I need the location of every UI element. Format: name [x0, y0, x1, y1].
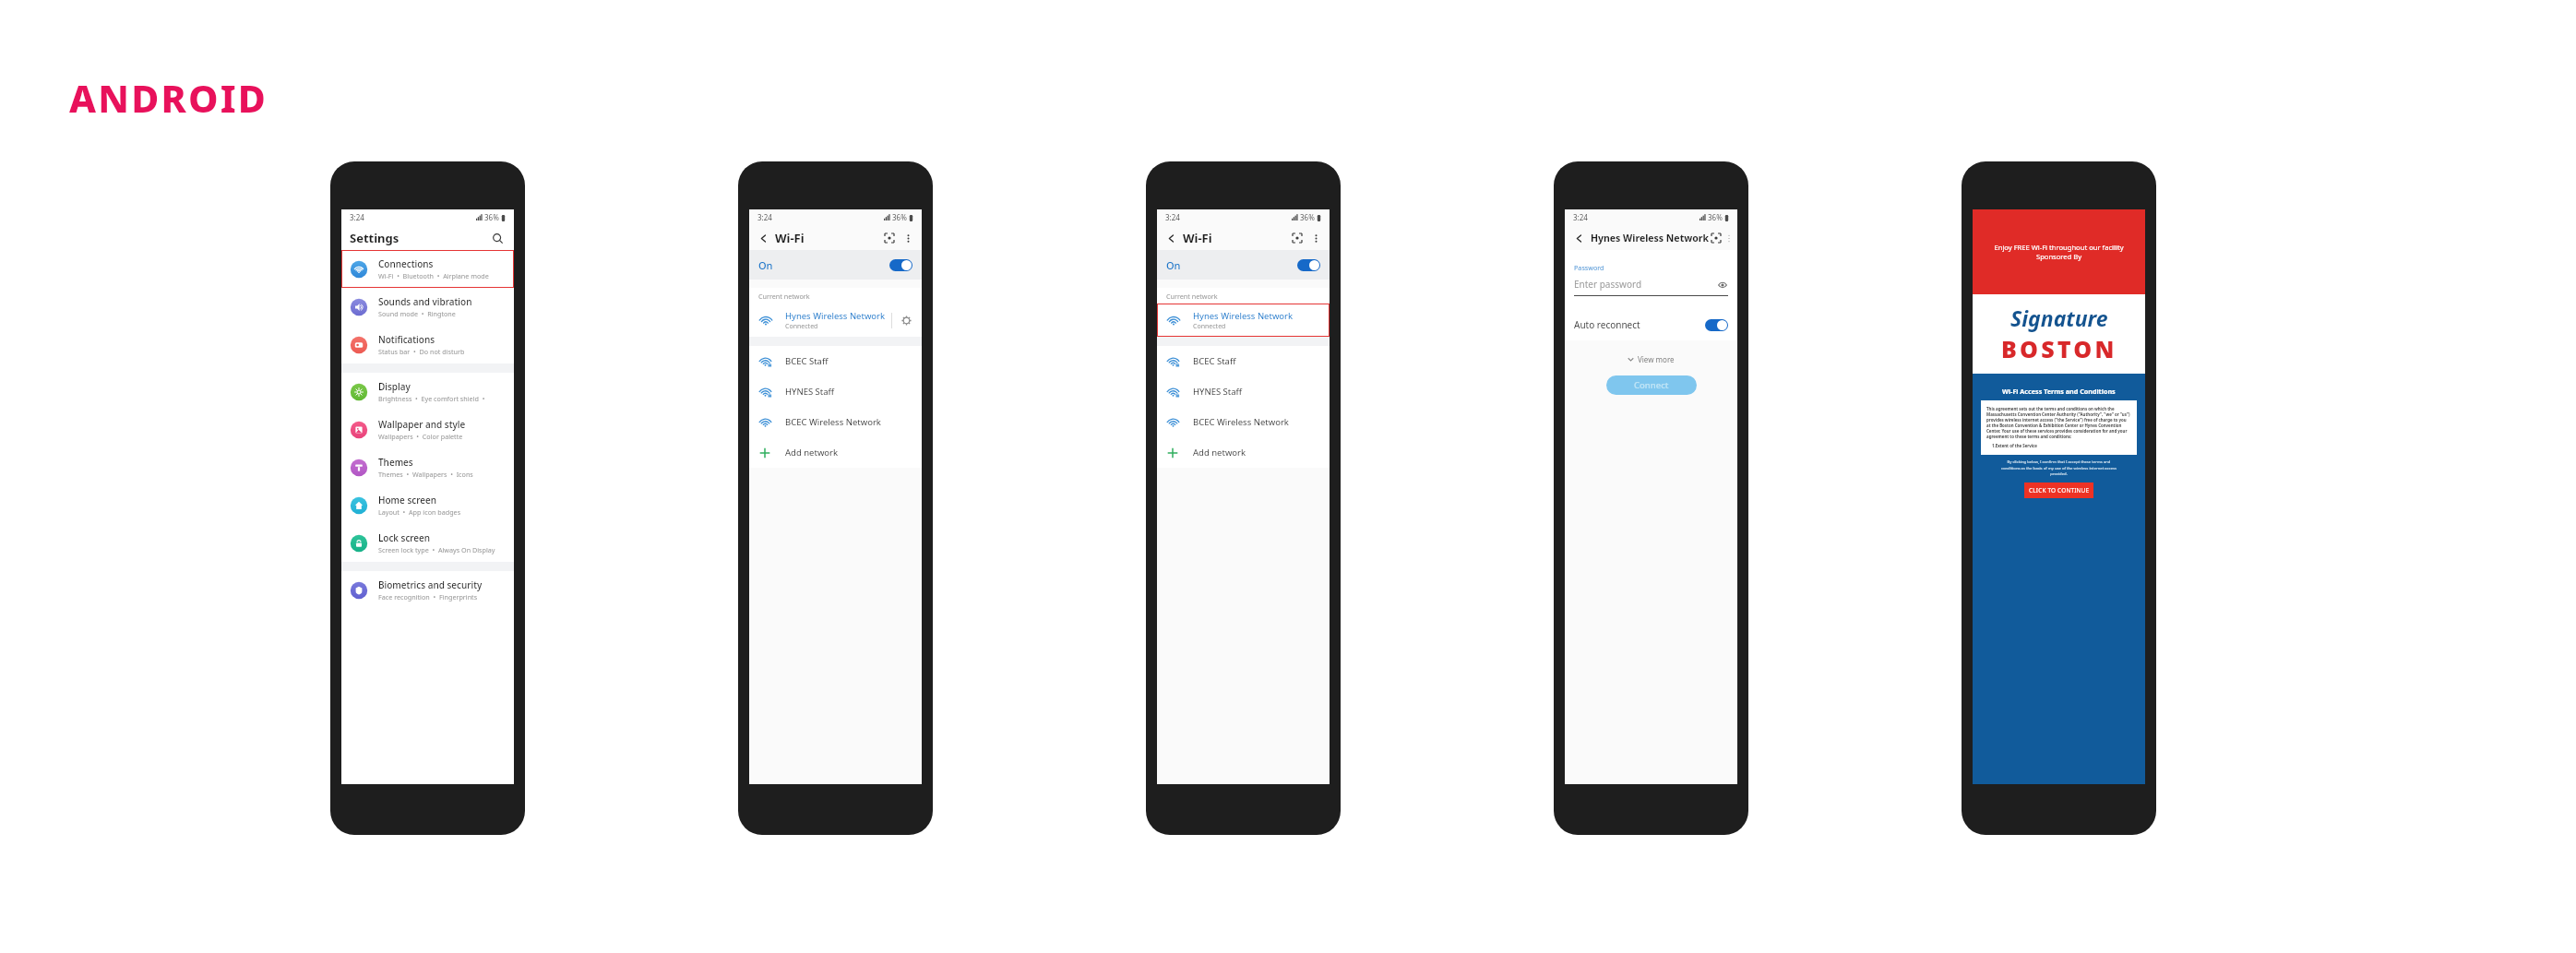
staticText: 36% — [1708, 212, 1723, 222]
button[interactable]: Auto reconnect — [1565, 309, 1737, 340]
button[interactable]: Connections — [341, 250, 514, 288]
staticText: Home screen — [378, 494, 436, 506]
staticText: 3:24 — [757, 212, 772, 222]
button[interactable]: Home screen — [341, 486, 514, 524]
staticText: 1.Extent of the Service — [1992, 443, 2037, 448]
staticText: Face recognition • Fingerprints — [378, 592, 478, 602]
staticText: Hynes Wireless Network — [1591, 232, 1709, 244]
staticText: BCEC Staff — [1193, 355, 1236, 367]
button[interactable]: Connect — [1606, 375, 1697, 395]
staticText: Display — [378, 380, 411, 393]
staticText: Wi-Fi — [775, 230, 805, 246]
staticText: On — [758, 258, 773, 272]
staticText: Current network — [1166, 292, 1218, 301]
staticText: Wi-Fi Access Terms and Conditions — [2002, 387, 2116, 396]
staticText: Wallpaper and style — [378, 418, 466, 431]
button[interactable]: Lock screen — [341, 524, 514, 562]
button[interactable]: HYNES Staff — [1157, 376, 1330, 407]
button[interactable]: Hynes Wireless Network — [749, 304, 922, 337]
button[interactable]: On — [1157, 250, 1330, 280]
button[interactable]: BCEC Staff — [749, 346, 922, 376]
button[interactable]: CLICK TO CONTINUE — [2024, 482, 2093, 498]
staticText: Sound mode • Ringtone — [378, 309, 456, 318]
staticText: This agreement sets out the terms and co… — [1986, 406, 2131, 439]
staticText: Status bar • Do not disturb — [378, 347, 465, 356]
staticText: BCEC Wireless Network — [785, 416, 881, 428]
staticText: Themes • Wallpapers • Icons — [378, 470, 473, 479]
staticText: Layout • App icon badges — [378, 507, 461, 517]
staticText: Current network — [758, 292, 810, 301]
staticText: View more — [1638, 354, 1675, 364]
button[interactable]: On — [749, 250, 922, 280]
staticText: Add network — [785, 447, 839, 459]
staticText: 36% — [484, 212, 499, 222]
button[interactable]: Hynes Wireless Network — [1157, 304, 1330, 337]
button[interactable]: Themes — [341, 448, 514, 486]
staticText: BCEC Wireless Network — [1193, 416, 1289, 428]
staticText: Biometrics and security — [378, 578, 483, 591]
button[interactable]: BCEC Wireless Network — [749, 407, 922, 437]
button[interactable]: Sounds and vibration — [341, 288, 514, 326]
button[interactable]: More options — [1727, 231, 1731, 245]
button[interactable]: Scan QR code — [882, 231, 897, 245]
button[interactable]: HYNES Staff — [749, 376, 922, 407]
staticText: Brightness • Eye comfort shield • Naviga… — [378, 394, 506, 403]
button[interactable]: Search — [489, 230, 506, 246]
staticText: Password — [1574, 263, 1604, 272]
staticText: Sounds and vibration — [378, 295, 472, 308]
staticText: Signature — [2010, 304, 2108, 332]
staticText: 3:24 — [350, 212, 364, 222]
staticText: 3:24 — [1573, 212, 1588, 222]
staticText: HYNES Staff — [785, 386, 835, 398]
button[interactable]: Connections — [341, 250, 514, 288]
staticText: Wi-Fi — [1183, 230, 1212, 246]
button[interactable]: Add network — [1157, 437, 1330, 468]
staticText: Enjoy FREE Wi-Fi throughout our facility… — [1980, 243, 2138, 261]
staticText: HYNES Staff — [1193, 386, 1243, 398]
button[interactable]: Show password — [1716, 279, 1728, 291]
button[interactable]: Notifications — [341, 326, 514, 363]
button[interactable]: Add network — [749, 437, 922, 468]
button[interactable]: Display — [341, 373, 514, 411]
button[interactable]: BCEC Staff — [1157, 346, 1330, 376]
staticText: On — [1166, 258, 1181, 272]
staticText: Notifications — [378, 333, 435, 346]
button[interactable]: Scan QR code — [1709, 231, 1723, 245]
staticText: By clicking below, I confirm that I acce… — [1982, 459, 2136, 476]
button[interactable]: View more — [1622, 352, 1680, 366]
staticText: 3:24 — [1165, 212, 1180, 222]
button[interactable]: Back — [756, 231, 770, 245]
staticText: Settings — [350, 230, 400, 246]
staticText: 36% — [892, 212, 907, 222]
staticText: ANDROID — [69, 72, 268, 124]
staticText: BCEC Staff — [785, 355, 829, 367]
button[interactable]: Biometrics and security — [341, 571, 514, 609]
staticText: Enter password — [1574, 278, 1716, 291]
button[interactable]: Back — [1163, 231, 1178, 245]
button[interactable]: BCEC Wireless Network — [1157, 407, 1330, 437]
button[interactable]: Network settings — [900, 314, 912, 327]
button[interactable]: Scan QR code — [1290, 231, 1305, 245]
button[interactable]: More options — [1308, 231, 1323, 245]
staticText: Wi-Fi • Bluetooth • Airplane mode — [378, 271, 489, 280]
staticText: Lock screen — [378, 531, 431, 544]
staticText: Connections — [378, 257, 434, 270]
staticText: Auto reconnect — [1574, 318, 1640, 331]
staticText: 36% — [1300, 212, 1315, 222]
staticText: Add network — [1193, 447, 1246, 459]
staticText: Hynes Wireless Network — [785, 310, 886, 322]
button[interactable]: More options — [900, 231, 915, 245]
staticText: Connected — [785, 322, 818, 331]
button[interactable]: Wallpaper and style — [341, 411, 514, 448]
staticText: Wallpapers • Color palette — [378, 432, 463, 441]
staticText: Connect — [1634, 379, 1669, 391]
staticText: Connected — [1193, 322, 1226, 331]
staticText: Hynes Wireless Network — [1193, 310, 1294, 322]
staticText: BOSTON — [2001, 333, 2117, 364]
staticText: Themes — [378, 456, 413, 469]
staticText: Screen lock type • Always On Display — [378, 545, 495, 554]
staticText: CLICK TO CONTINUE — [2029, 486, 2090, 494]
button[interactable]: Back — [1571, 231, 1586, 245]
